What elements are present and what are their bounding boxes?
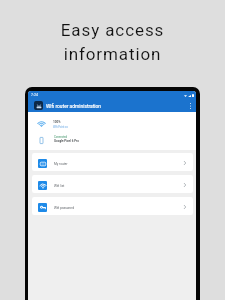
staticText: 7:24 xyxy=(31,93,38,97)
staticText: Wifi router administration xyxy=(46,103,102,109)
staticText: Easy access information xyxy=(0,20,225,64)
staticText: Wifi Point xx xyxy=(53,125,68,128)
button[interactable]: 100% xyxy=(28,112,196,131)
button[interactable]: Connected xyxy=(28,131,196,149)
staticText: Wifi list xyxy=(54,184,65,188)
staticText: Google Pixel 6 Pro xyxy=(54,139,79,143)
staticText: Wifi password xyxy=(54,206,75,210)
button[interactable]: Wifi list xyxy=(32,175,193,193)
staticText: Connected xyxy=(54,135,67,138)
button[interactable]: More options xyxy=(186,101,195,110)
staticText: My router xyxy=(54,162,68,166)
button[interactable]: My router xyxy=(32,153,193,171)
staticText: 100% xyxy=(53,120,61,124)
button[interactable]: Wifi password xyxy=(32,197,193,215)
